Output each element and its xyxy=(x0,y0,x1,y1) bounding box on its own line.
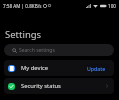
staticText: Security status xyxy=(21,82,61,90)
button[interactable]: Search settings xyxy=(4,44,114,56)
staticText: 7:58 AM | 0.8KB/s xyxy=(3,3,42,9)
button[interactable]: Update xyxy=(87,63,106,73)
staticText: 100 xyxy=(108,3,116,9)
staticText: Settings xyxy=(5,28,42,41)
button[interactable]: My device xyxy=(4,60,114,76)
staticText: My device xyxy=(21,64,48,72)
other: Open security status xyxy=(105,84,109,88)
button[interactable]: Security status xyxy=(4,78,114,94)
staticText: Search settings xyxy=(19,47,55,54)
staticText: Update xyxy=(87,65,106,72)
